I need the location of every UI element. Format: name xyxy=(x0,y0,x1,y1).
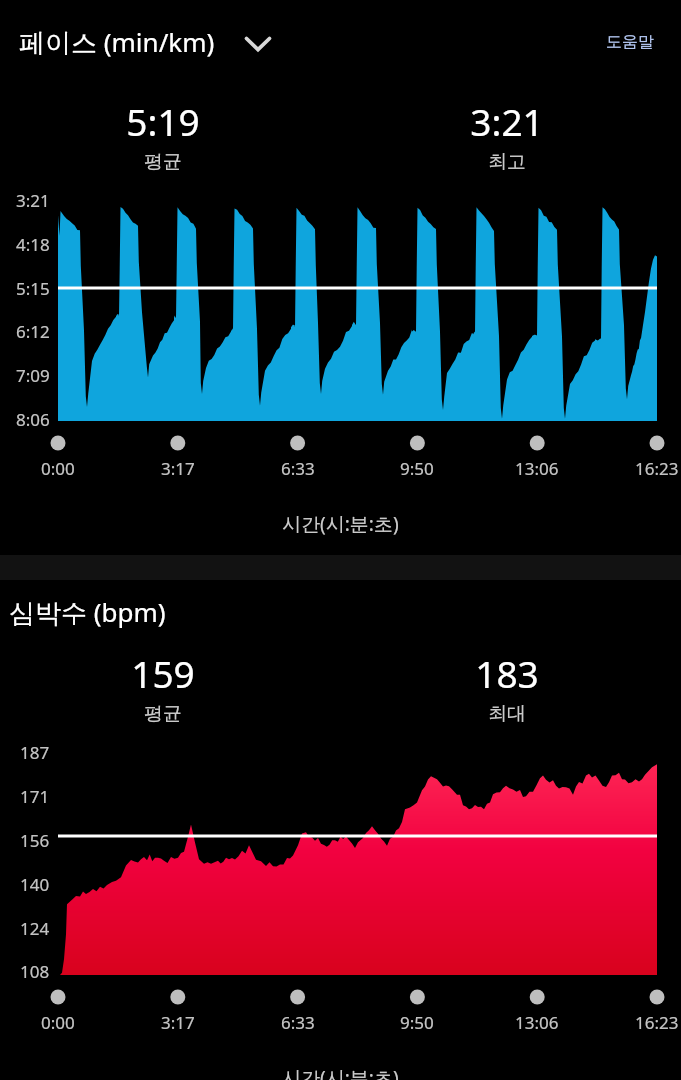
staticText: 13:06 xyxy=(515,457,559,480)
staticText: 16:23 xyxy=(635,1011,679,1034)
button[interactable]: 페이스 (min/km) xyxy=(19,24,274,60)
staticText: 8:06 xyxy=(16,408,50,431)
staticText: 7:09 xyxy=(16,364,50,387)
staticText: 3:21 xyxy=(16,189,50,212)
staticText: 5:15 xyxy=(16,277,50,300)
button[interactable]: 도움말 xyxy=(602,28,658,56)
staticText: 0:00 xyxy=(41,1011,75,1034)
other: Select metric xyxy=(242,26,274,58)
staticText: 108 xyxy=(20,960,50,983)
staticText: 6:33 xyxy=(281,1011,315,1034)
staticText: 183 xyxy=(475,648,539,698)
staticText: 3:21 xyxy=(470,96,544,146)
staticText: 평균 xyxy=(144,702,182,726)
staticText: 4:18 xyxy=(16,233,50,256)
staticText: 시간(시:분:초) xyxy=(282,1065,399,1080)
staticText: 9:50 xyxy=(400,457,434,480)
staticText: 심박수 (bpm) xyxy=(9,594,166,630)
staticText: 3:17 xyxy=(161,1011,195,1034)
staticText: 13:06 xyxy=(515,1011,559,1034)
staticText: 시간(시:분:초) xyxy=(282,511,399,537)
staticText: 최고 xyxy=(488,150,526,174)
staticText: 6:12 xyxy=(16,320,50,343)
staticText: 3:17 xyxy=(161,457,195,480)
staticText: 5:19 xyxy=(126,96,200,146)
staticText: 페이스 (min/km) xyxy=(19,24,215,60)
staticText: 9:50 xyxy=(400,1011,434,1034)
staticText: 171 xyxy=(20,785,50,808)
staticText: 156 xyxy=(20,829,50,852)
staticText: 도움말 xyxy=(606,32,654,52)
staticText: 16:23 xyxy=(635,457,679,480)
staticText: 최대 xyxy=(488,702,526,726)
staticText: 159 xyxy=(131,648,195,698)
staticText: 평균 xyxy=(144,150,182,174)
staticText: 0:00 xyxy=(41,457,75,480)
staticText: 6:33 xyxy=(281,457,315,480)
staticText: 140 xyxy=(20,873,50,896)
staticText: 124 xyxy=(20,917,50,940)
staticText: 187 xyxy=(20,741,50,764)
